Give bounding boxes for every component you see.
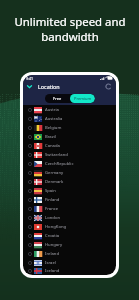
staticText: Finland <box>45 197 60 203</box>
button[interactable]: Iceland <box>23 267 116 275</box>
staticText: HongKong <box>45 224 67 230</box>
staticText: Australia <box>45 116 63 122</box>
staticText: Switzerland <box>45 152 68 158</box>
staticText: Hungary <box>45 242 63 248</box>
staticText: Belgium <box>45 125 62 131</box>
staticText: Brazil <box>45 134 56 140</box>
button[interactable]: Ireland <box>23 249 116 258</box>
button[interactable]: Spain <box>23 186 116 195</box>
staticText: Canada <box>45 143 60 149</box>
button[interactable]: Denmark <box>23 177 116 186</box>
button[interactable]: Canada <box>23 141 116 150</box>
button[interactable]: Refresh <box>104 82 113 91</box>
staticText: France <box>45 206 59 212</box>
staticText: Germany <box>45 170 64 176</box>
staticText: Ireland <box>45 251 60 257</box>
button[interactable]: Hungary <box>23 240 116 249</box>
button[interactable]: Germany <box>23 168 116 177</box>
button[interactable]: CzechRepublic <box>23 159 116 168</box>
staticText: Austria <box>45 107 59 113</box>
button[interactable]: Expand <box>25 82 34 91</box>
button[interactable]: Switzerland <box>23 150 116 159</box>
staticText: Denmark <box>45 179 64 185</box>
staticText: Unlimited speed and bandwidth <box>14 14 126 44</box>
button[interactable]: London <box>23 213 116 222</box>
staticText: Croatia <box>45 233 60 239</box>
staticText: CzechRepublic <box>45 161 74 167</box>
button[interactable]: Israel <box>23 258 116 267</box>
button[interactable]: Brazil <box>23 132 116 141</box>
button[interactable]: Croatia <box>23 231 116 240</box>
button[interactable]: Austria <box>23 105 116 114</box>
staticText: Iceland <box>45 268 60 274</box>
button[interactable]: Free <box>45 94 70 103</box>
staticText: Premium <box>74 96 92 101</box>
staticText: Free <box>53 96 62 101</box>
button[interactable]: France <box>23 204 116 213</box>
staticText: Israel <box>45 260 56 266</box>
staticText: Location <box>38 83 60 90</box>
button[interactable]: Australia <box>23 114 116 123</box>
staticText: Spain <box>45 188 56 194</box>
button[interactable]: HongKong <box>23 222 116 231</box>
staticText: 9:41 <box>26 76 33 81</box>
button[interactable]: Premium <box>70 94 95 103</box>
staticText: London <box>45 215 61 221</box>
button[interactable]: Finland <box>23 195 116 204</box>
button[interactable]: Belgium <box>23 123 116 132</box>
